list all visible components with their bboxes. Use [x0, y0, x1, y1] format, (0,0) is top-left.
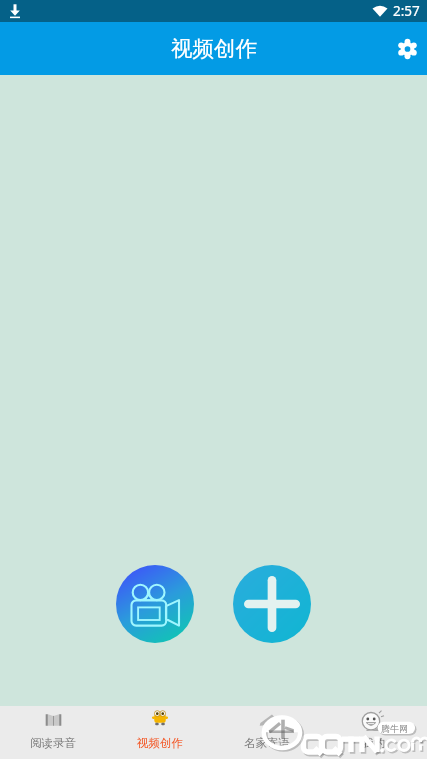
- button[interactable]: 我的: [320, 706, 427, 759]
- staticText: 2:57: [393, 2, 420, 20]
- button[interactable]: 阅读录音: [0, 706, 106, 759]
- button[interactable]: Record video: [116, 565, 194, 643]
- button[interactable]: Add: [233, 565, 311, 643]
- staticText: 视频创作: [137, 736, 183, 750]
- button[interactable]: Settings: [387, 29, 427, 69]
- staticText: 腾牛网: [381, 723, 408, 734]
- button[interactable]: 名家寄语: [213, 706, 320, 759]
- staticText: 阅读录音: [30, 736, 76, 750]
- button[interactable]: 视频创作: [106, 706, 213, 759]
- staticText: 我的: [362, 736, 385, 750]
- staticText: 视频创作: [171, 35, 257, 62]
- staticText: 名家寄语: [244, 736, 290, 750]
